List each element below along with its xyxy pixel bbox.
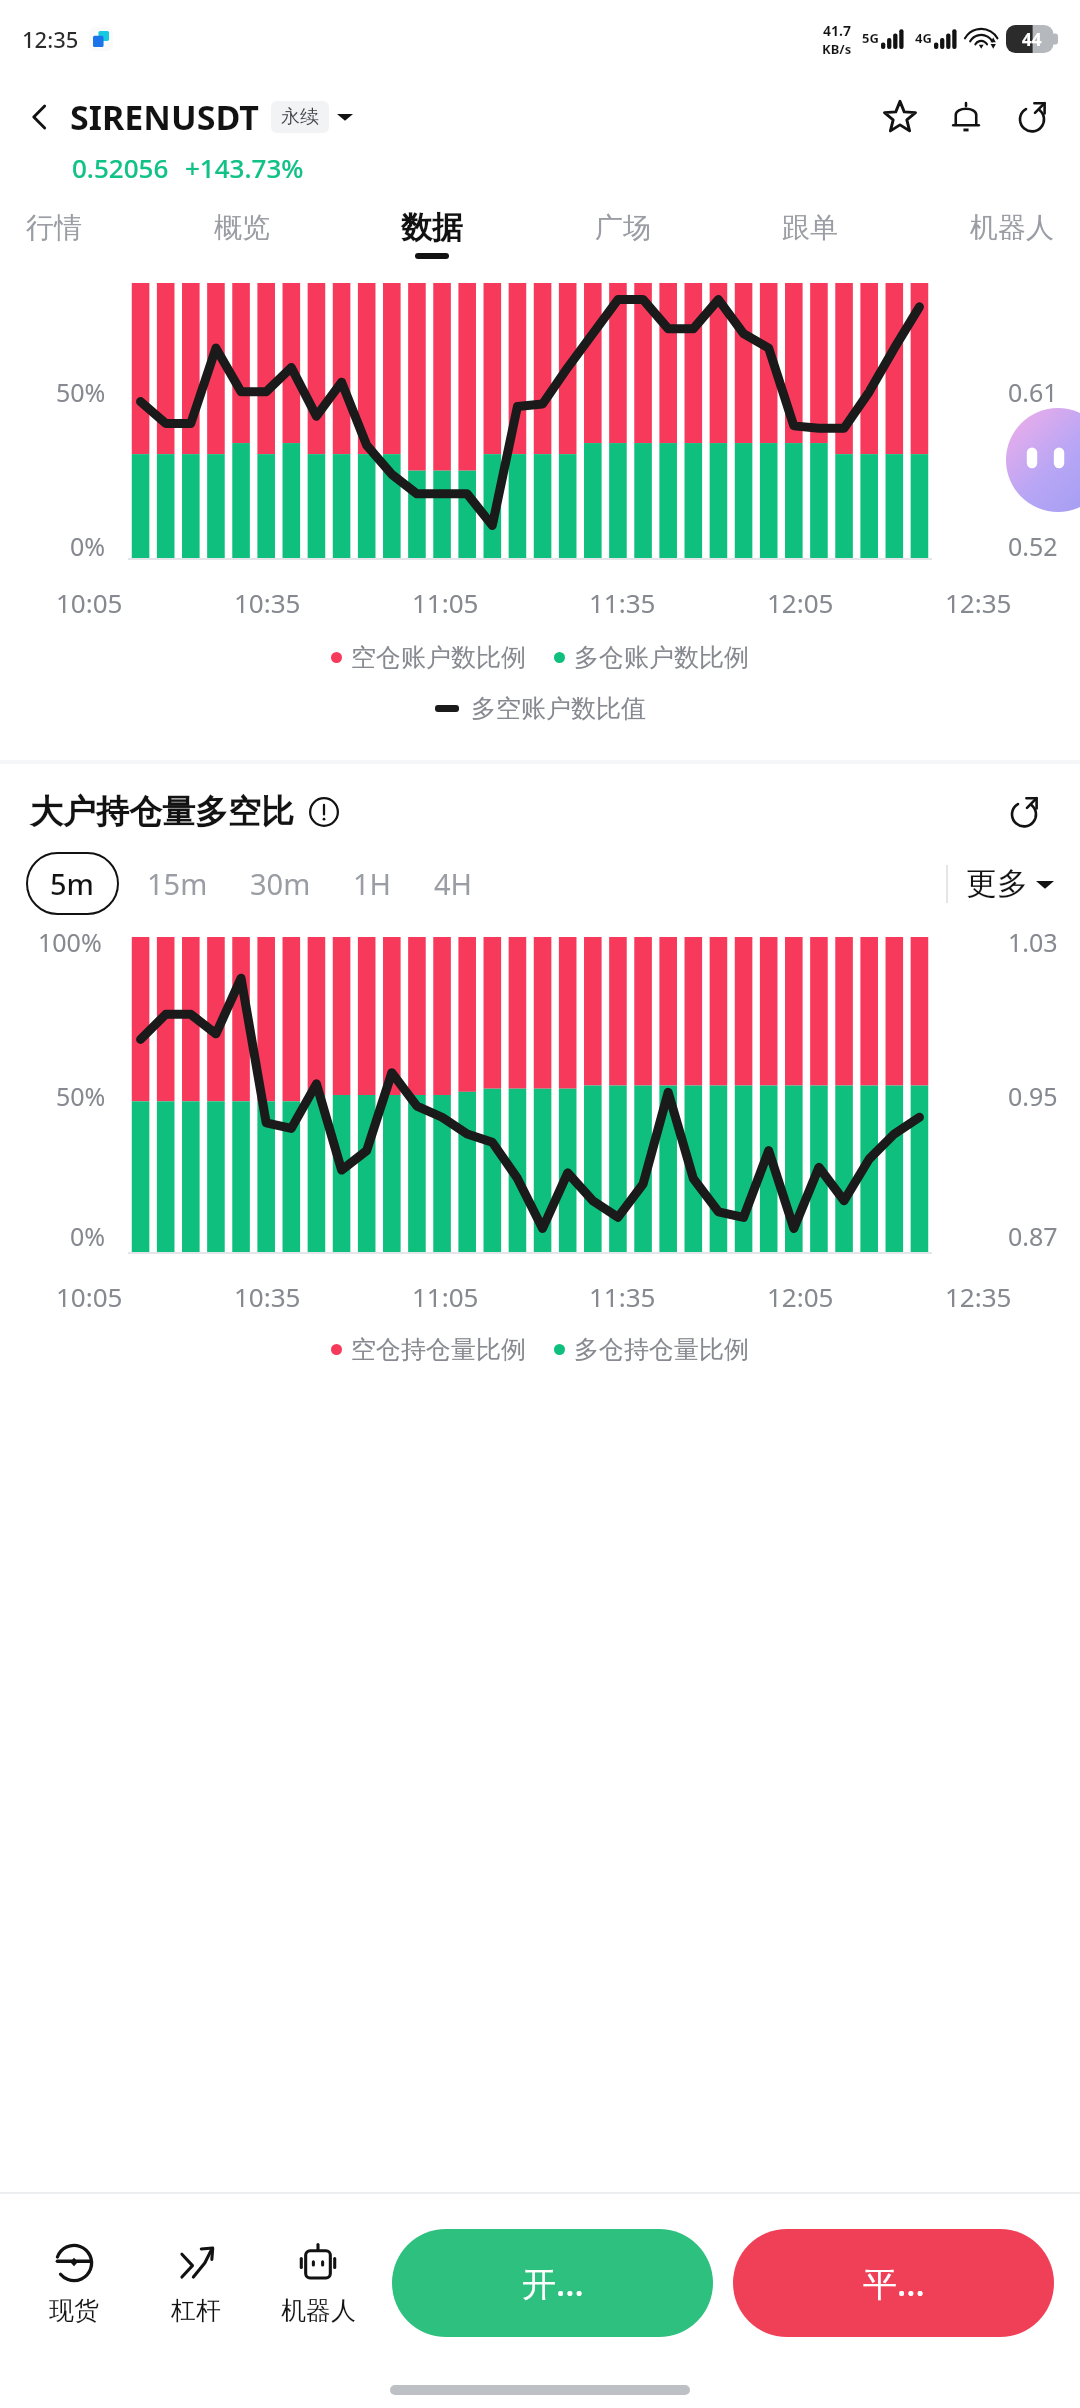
button[interactable]: 数据 xyxy=(399,202,465,265)
staticText: 44 xyxy=(1022,28,1042,51)
staticText: 机器人 xyxy=(970,210,1054,245)
staticText: 10:05 xyxy=(56,585,123,620)
staticText: 0% xyxy=(70,1219,106,1253)
staticText: 1.03 xyxy=(1008,925,1058,959)
staticText: 4G xyxy=(915,29,932,47)
button[interactable]: 跟单 xyxy=(780,204,840,263)
staticText: 0.61 xyxy=(1008,375,1058,409)
staticText: 空仓持仓量比例 xyxy=(351,1334,526,1365)
staticText: SIRENUSDT xyxy=(70,94,259,140)
staticText: 开... xyxy=(522,2260,584,2306)
button[interactable]: 1H xyxy=(339,852,406,915)
staticText: 机器人 xyxy=(281,2295,356,2326)
staticText: 0.52056 xyxy=(72,150,169,185)
staticText: 30m xyxy=(250,864,311,903)
button[interactable]: Alerts xyxy=(940,91,992,143)
staticText: 10:05 xyxy=(56,1279,123,1314)
staticText: 12:35 xyxy=(945,1279,1012,1314)
staticText: 11:35 xyxy=(589,1279,656,1314)
staticText: 5m xyxy=(50,864,95,903)
staticText: 多仓持仓量比例 xyxy=(574,1334,749,1365)
staticText: 0% xyxy=(70,529,106,563)
button[interactable]: 更多 xyxy=(966,854,1054,913)
staticText: 12:05 xyxy=(767,1279,834,1314)
staticText: 11:05 xyxy=(412,585,479,620)
button[interactable]: Back xyxy=(14,91,66,143)
staticText: 更多 xyxy=(966,864,1028,903)
button[interactable]: 机器人 xyxy=(968,204,1056,263)
staticText: 永续 xyxy=(281,105,319,129)
staticText: 数据 xyxy=(401,208,463,247)
staticText: 15m xyxy=(147,864,208,903)
button[interactable]: 机器人 xyxy=(270,2235,366,2332)
staticText: 12:05 xyxy=(767,585,834,620)
button[interactable]: 杠杆 xyxy=(148,2235,244,2332)
staticText: 行情 xyxy=(26,210,82,245)
staticText: 4H xyxy=(434,864,473,903)
button[interactable]: Expand xyxy=(337,109,353,125)
button[interactable]: 概览 xyxy=(212,204,272,263)
button[interactable]: Share chart xyxy=(998,786,1050,838)
button[interactable]: 平... xyxy=(733,2229,1054,2337)
staticText: 现货 xyxy=(49,2295,99,2326)
staticText: 0.95 xyxy=(1008,1079,1058,1113)
staticText: 多仓账户数比例 xyxy=(574,642,749,673)
staticText: 11:35 xyxy=(589,585,656,620)
staticText: 杠杆 xyxy=(171,2295,221,2326)
button[interactable]: Assistant xyxy=(1006,408,1080,512)
staticText: 50% xyxy=(56,1079,106,1113)
button[interactable]: 行情 xyxy=(24,204,84,263)
staticText: 11:05 xyxy=(412,1279,479,1314)
staticText: 概览 xyxy=(214,210,270,245)
staticText: 41.7 xyxy=(823,21,851,40)
staticText: 广场 xyxy=(595,210,651,245)
button[interactable]: Favorite xyxy=(874,91,926,143)
button[interactable]: Share xyxy=(1006,91,1058,143)
button[interactable]: 15m xyxy=(133,852,222,915)
staticText: 跟单 xyxy=(782,210,838,245)
staticText: 大户持仓量多空比 xyxy=(30,791,294,833)
staticText: 多空账户数比值 xyxy=(471,693,646,724)
staticText: 0.52 xyxy=(1008,529,1058,563)
staticText: +143.73% xyxy=(185,150,304,185)
button[interactable]: 开... xyxy=(392,2229,713,2337)
button[interactable]: 4H xyxy=(420,852,487,915)
button[interactable]: Info xyxy=(306,794,342,830)
button[interactable]: 现货 xyxy=(26,2235,122,2332)
button[interactable]: 5m xyxy=(26,852,119,915)
staticText: 50% xyxy=(56,375,106,409)
staticText: 平... xyxy=(863,2260,925,2306)
staticText: 5G xyxy=(862,29,879,47)
staticText: KB/s xyxy=(822,40,852,58)
staticText: 100% xyxy=(38,925,102,959)
staticText: 12:35 xyxy=(22,24,79,54)
button[interactable]: 广场 xyxy=(593,204,653,263)
staticText: 12:35 xyxy=(945,585,1012,620)
staticText: 10:35 xyxy=(234,1279,301,1314)
staticText: 空仓账户数比例 xyxy=(351,642,526,673)
button[interactable]: 永续 xyxy=(271,101,329,133)
staticText: 1H xyxy=(353,864,392,903)
staticText: 0.87 xyxy=(1008,1219,1058,1253)
button[interactable]: 30m xyxy=(236,852,325,915)
staticText: 10:35 xyxy=(234,585,301,620)
